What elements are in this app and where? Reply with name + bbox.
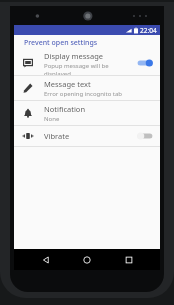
staticText: Vibrate (44, 131, 70, 141)
staticText: Error opening incognito tab (44, 90, 123, 98)
button[interactable]: Toggle off (136, 130, 154, 142)
staticText: Display message (44, 51, 104, 61)
staticText: None (44, 115, 60, 123)
staticText: Message text (44, 79, 91, 89)
button[interactable]: Vibrate (14, 126, 160, 146)
button[interactable]: Message text (14, 76, 160, 100)
button[interactable]: Display message (14, 51, 160, 75)
staticText: Notification (44, 104, 86, 114)
button[interactable]: Recents (119, 250, 139, 270)
staticText: Popup message will be displayed (44, 62, 136, 75)
staticText: Prevent open settings (24, 38, 98, 48)
button[interactable]: Back (36, 250, 56, 270)
button[interactable]: Notification (14, 101, 160, 125)
button[interactable]: Toggle on (136, 57, 154, 69)
staticText: 22:04 (140, 26, 157, 35)
button[interactable]: Home (77, 250, 97, 270)
